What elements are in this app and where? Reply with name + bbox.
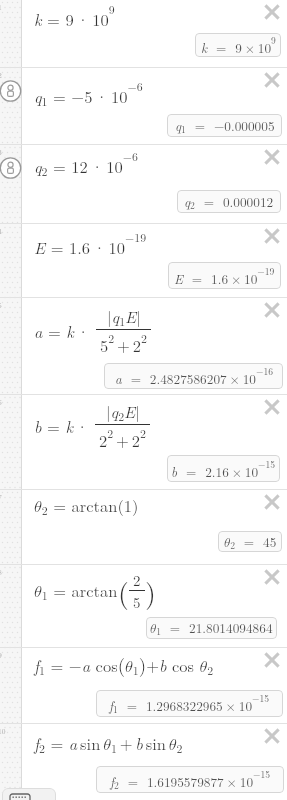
button[interactable]: [263, 651, 281, 669]
staticText: 5: [0, 300, 2, 311]
staticText: 4: [0, 226, 2, 237]
staticText: 𝜃2 = 45: [224, 532, 277, 552]
staticText: 9: [0, 650, 2, 661]
staticText: 8: [0, 567, 2, 578]
staticText: q1 = −5 · 10−6: [34, 78, 143, 109]
staticText: |q1E|: [107, 304, 141, 329]
button[interactable]: E = 1.6 × 10−19: [168, 262, 281, 289]
staticText: 52 + 22: [100, 330, 147, 356]
button[interactable]: [263, 493, 281, 511]
button[interactable]: b = 2.16 × 10−15: [167, 455, 280, 482]
button[interactable]: [2, 788, 56, 800]
button[interactable]: [263, 398, 281, 416]
button[interactable]: [263, 227, 281, 245]
staticText: b = k ·: [34, 414, 95, 437]
staticText: b = 2.16 × 10−15: [171, 457, 276, 481]
button[interactable]: [0, 80, 22, 102]
staticText: q1 = −0.000005: [175, 116, 275, 136]
staticText: 10: [0, 726, 6, 737]
staticText: a = 2.4827586207 × 10−16: [115, 364, 273, 388]
button[interactable]: 𝜃2 = 45: [218, 531, 282, 552]
staticText: 𝜃2 = arctan(1): [34, 493, 139, 518]
button[interactable]: [263, 301, 281, 319]
button[interactable]: [0, 157, 22, 179]
staticText: k = 9 · 109: [34, 1, 115, 31]
staticText: 7: [0, 492, 2, 503]
staticText: 𝜃1 = 21.8014094864: [150, 618, 273, 638]
staticText: 3: [0, 147, 2, 158]
button[interactable]: f2 = 1.6195579877 × 10−15: [96, 766, 284, 793]
button[interactable]: k = 9 × 109: [195, 33, 281, 57]
staticText: q2 = 0.000012: [184, 192, 274, 212]
staticText: f2 = a sin 𝜃1 + b sin 𝜃2: [34, 731, 183, 756]
staticText: 22 + 22: [99, 425, 146, 451]
staticText: ): [145, 571, 156, 611]
staticText: E = 1.6 × 10−19: [174, 264, 275, 288]
staticText: 6: [0, 397, 2, 408]
button[interactable]: [263, 71, 281, 89]
staticText: 2: [133, 569, 141, 590]
button[interactable]: q2 = 0.000012: [177, 190, 281, 213]
staticText: |q2E|: [106, 399, 140, 424]
staticText: 5: [133, 591, 141, 612]
button[interactable]: [263, 568, 281, 586]
button[interactable]: q1 = −0.000005: [167, 114, 282, 137]
button[interactable]: f1 = 1.2968322965 × 10−15: [96, 690, 283, 717]
button[interactable]: 𝜃1 = 21.8014094864: [146, 617, 277, 639]
staticText: 1: [0, 2, 2, 13]
staticText: f1 = −a cos(𝜃1)+b cos 𝜃2: [34, 651, 214, 679]
staticText: q2 = 12 · 10−6: [34, 148, 139, 179]
button[interactable]: [263, 148, 281, 166]
staticText: k = 9 × 109: [201, 33, 276, 57]
staticText: f2 = 1.6195579877 × 10−15: [110, 767, 271, 792]
staticText: (: [118, 571, 129, 611]
staticText: a = k ·: [34, 319, 96, 342]
staticText: f1 = 1.2968322965 × 10−15: [109, 691, 270, 716]
button[interactable]: [263, 727, 281, 745]
staticText: 𝜃1 = arctan: [34, 578, 118, 603]
staticText: 2: [0, 70, 2, 81]
button[interactable]: [263, 3, 281, 21]
staticText: E = 1.6 · 10−19: [34, 229, 147, 259]
button[interactable]: a = 2.4827586207 × 10−16: [104, 363, 283, 389]
